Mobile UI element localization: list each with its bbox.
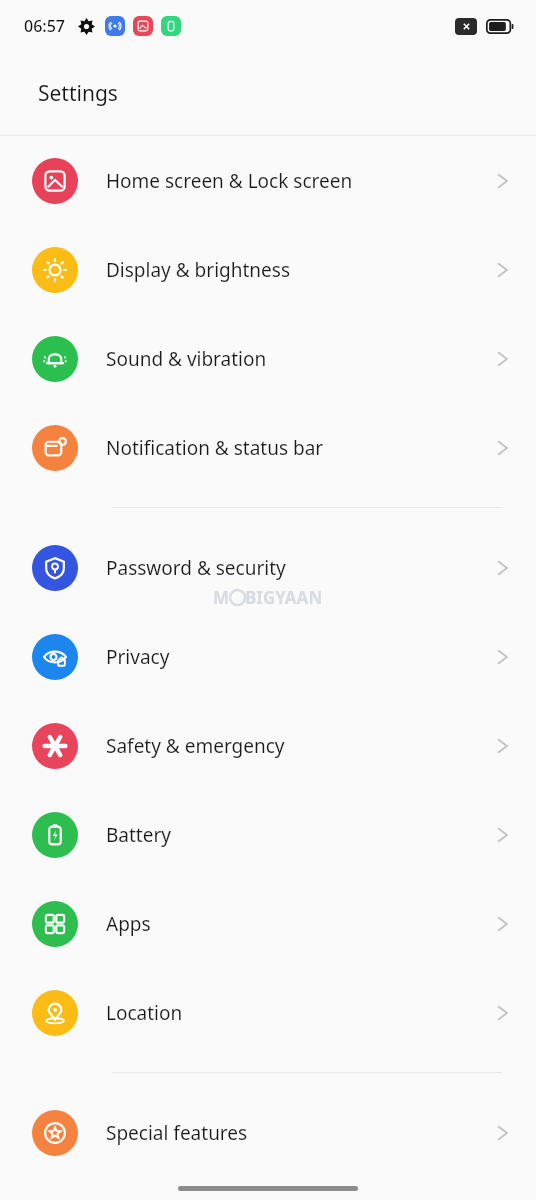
staticText: Home screen & Lock screen xyxy=(106,168,496,194)
staticText: Notification & status bar xyxy=(106,435,496,461)
button[interactable]: Display & brightness xyxy=(0,225,536,314)
button[interactable]: Password & security xyxy=(0,523,536,612)
staticText: Privacy xyxy=(106,644,496,670)
staticText: Safety & emergency xyxy=(106,733,496,759)
staticText: Settings xyxy=(38,79,118,108)
staticText: 06:57 xyxy=(24,15,65,37)
staticText: Password & security xyxy=(106,555,496,581)
staticText: Apps xyxy=(106,911,496,937)
staticText: Sound & vibration xyxy=(106,346,496,372)
button[interactable]: Safety & emergency xyxy=(0,701,536,790)
button[interactable]: Notification & status bar xyxy=(0,403,536,492)
button[interactable]: Sound & vibration xyxy=(0,314,536,403)
staticText: M xyxy=(213,586,230,609)
button[interactable]: Home screen & Lock screen xyxy=(0,136,536,225)
button[interactable]: Location xyxy=(0,968,536,1057)
staticText: Display & brightness xyxy=(106,257,496,283)
button[interactable]: Special features xyxy=(0,1088,536,1177)
staticText: Location xyxy=(106,1000,496,1026)
staticText: BIGYAAN xyxy=(245,586,323,609)
staticText: Special features xyxy=(106,1120,496,1146)
button[interactable]: Battery xyxy=(0,790,536,879)
staticText: Battery xyxy=(106,822,496,848)
button[interactable]: Apps xyxy=(0,879,536,968)
button[interactable]: Privacy xyxy=(0,612,536,701)
